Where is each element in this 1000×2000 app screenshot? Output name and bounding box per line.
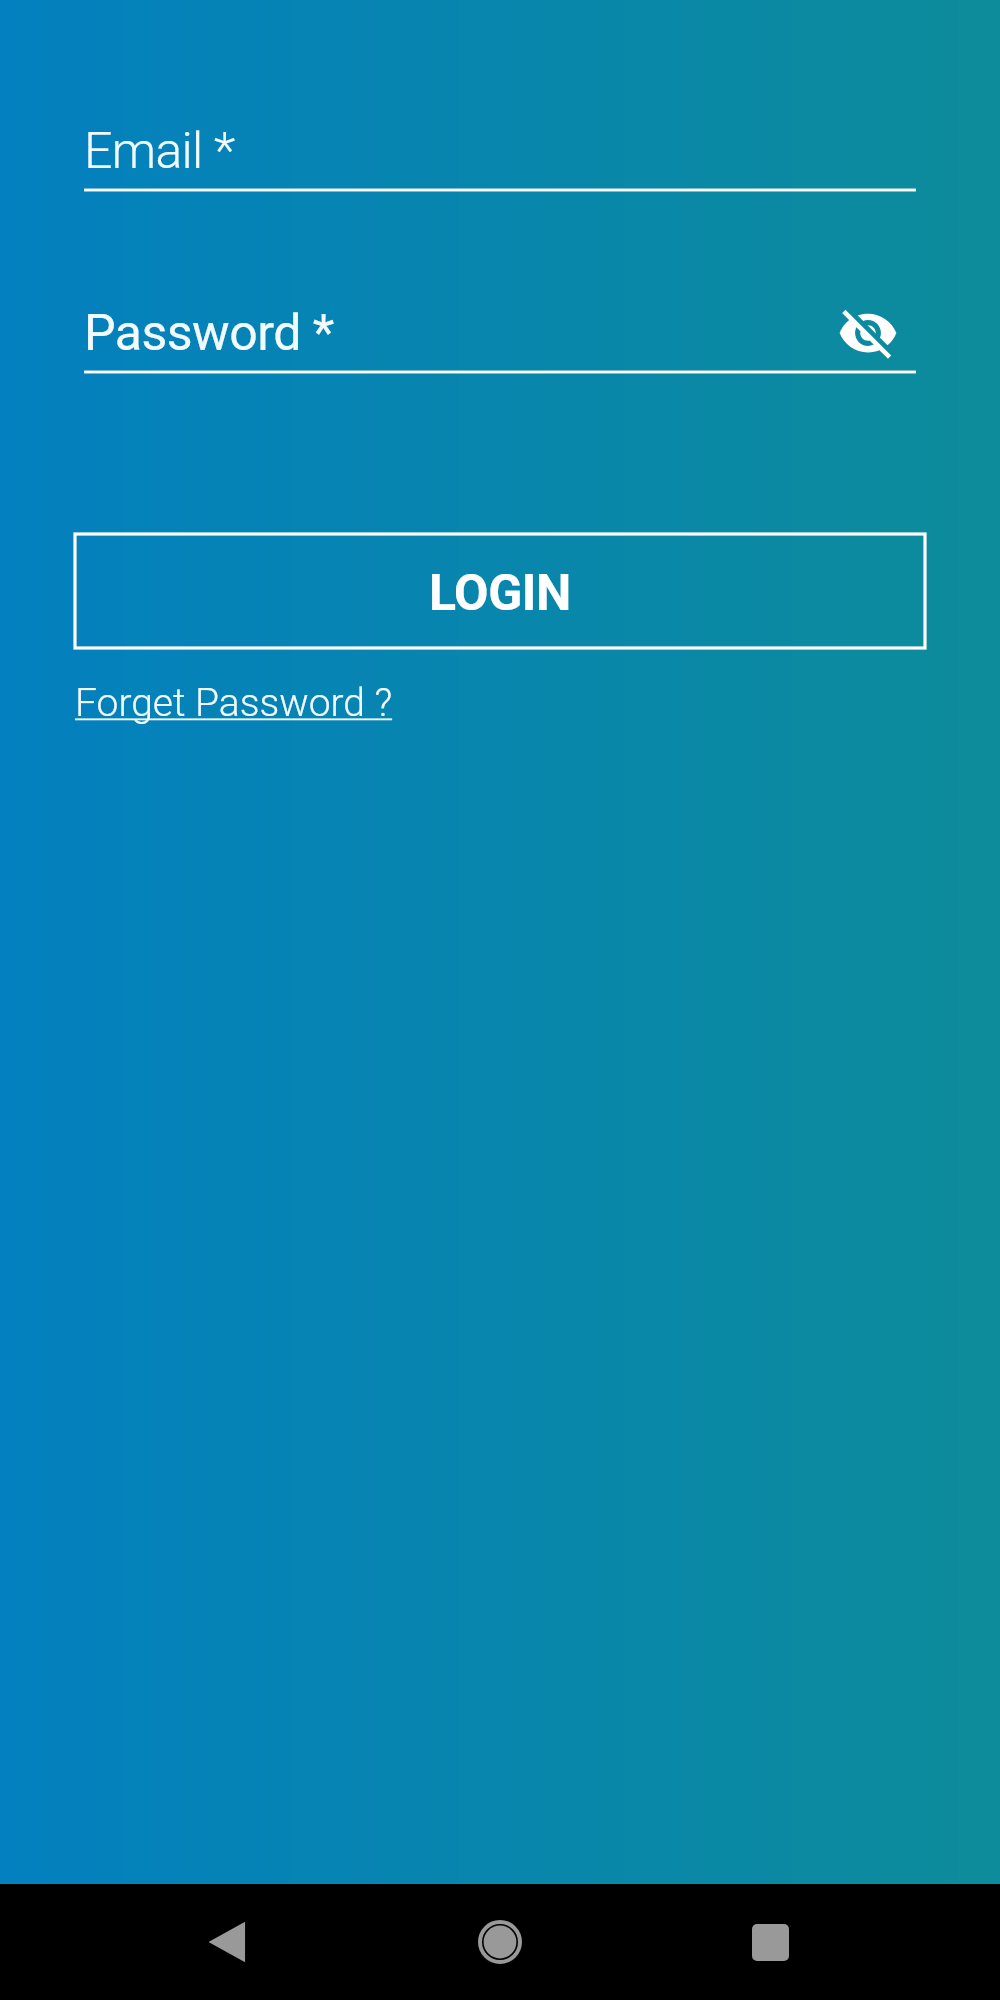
button[interactable]: Back (189, 1903, 267, 1981)
button[interactable]: Home (461, 1903, 539, 1981)
staticText: Password * (84, 304, 334, 363)
button[interactable]: Email * (84, 114, 916, 188)
button[interactable]: LOGIN (75, 534, 925, 648)
staticText: Email * (84, 122, 235, 181)
staticText: Forget Password ? (75, 680, 393, 726)
button[interactable]: Forget Password ? (75, 680, 393, 726)
button[interactable]: Recent apps (731, 1903, 809, 1981)
button[interactable]: Password * (84, 296, 916, 370)
button[interactable]: Show password (837, 302, 899, 364)
staticText: LOGIN (429, 564, 571, 623)
